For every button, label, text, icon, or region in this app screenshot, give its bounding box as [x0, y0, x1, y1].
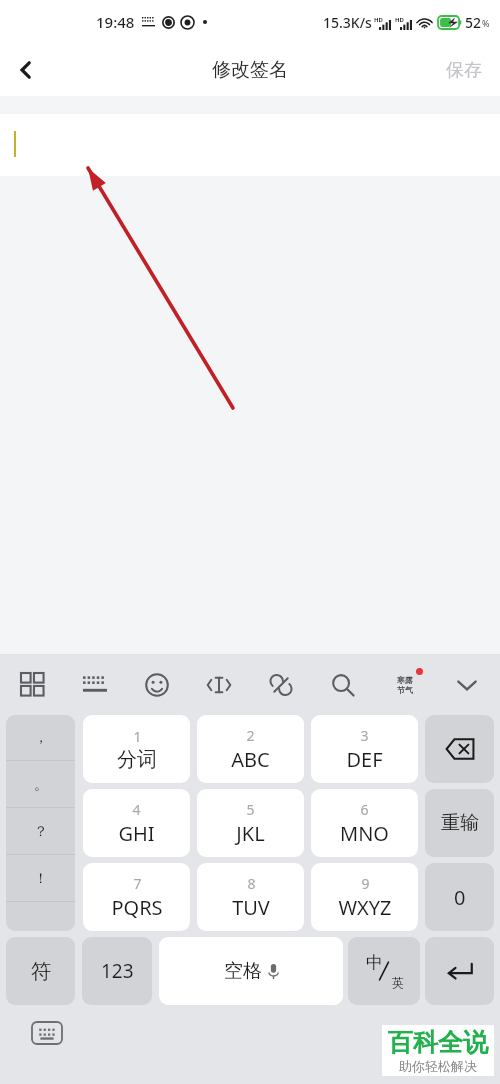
staticText: 百科全说	[388, 1027, 488, 1058]
button[interactable]: Search	[322, 664, 364, 706]
staticText: ！	[34, 870, 48, 888]
staticText: 节气	[397, 685, 413, 695]
staticText: 7	[133, 874, 142, 893]
staticText: 15.3K/s	[323, 13, 372, 32]
staticText: 。	[34, 776, 48, 794]
button[interactable]: Emoji	[136, 664, 178, 706]
staticText: 助你轻松解决	[399, 1058, 477, 1074]
staticText: 123	[101, 958, 134, 984]
button[interactable]: Backspace	[425, 715, 494, 783]
button[interactable]: 0	[425, 863, 494, 931]
staticText: 5	[246, 800, 255, 819]
staticText: 6	[360, 800, 369, 819]
button[interactable]: 6	[311, 789, 418, 857]
staticText: WXYZ	[338, 894, 392, 921]
staticText: TUV	[232, 894, 270, 921]
staticText: ？	[34, 823, 48, 841]
staticText: 8	[247, 874, 256, 893]
staticText: 4	[132, 800, 141, 819]
button[interactable]: 1	[83, 715, 190, 783]
button[interactable]: 123	[82, 937, 152, 1005]
staticText: ，	[34, 729, 48, 747]
staticText: 1	[133, 727, 142, 746]
staticText: JKL	[236, 820, 265, 847]
staticText: 中	[366, 952, 383, 973]
staticText: ABC	[231, 746, 270, 773]
button[interactable]: 7	[83, 863, 190, 931]
button[interactable]: 保存	[428, 44, 500, 96]
staticText: 2	[246, 726, 255, 745]
staticText: 分词	[117, 747, 157, 772]
staticText: 英	[392, 975, 404, 990]
button[interactable]: 5	[197, 789, 304, 857]
button[interactable]: Panels	[12, 664, 54, 706]
button[interactable]: Clipboard	[260, 664, 302, 706]
staticText: %	[482, 17, 490, 29]
staticText: 重输	[441, 811, 479, 835]
button[interactable]: Switch keyboard	[30, 1020, 64, 1046]
button[interactable]: Edit text	[198, 664, 240, 706]
button[interactable]: 3	[311, 715, 418, 783]
button[interactable]: Hide keyboard	[446, 664, 488, 706]
button[interactable]: 2	[197, 715, 304, 783]
button[interactable]: Seasonal	[384, 664, 426, 706]
button[interactable]: 8	[197, 863, 304, 931]
button[interactable]: ？	[6, 808, 75, 855]
button[interactable]: 9	[311, 863, 418, 931]
button[interactable]: 符	[6, 937, 75, 1005]
button[interactable]: ！	[6, 855, 75, 902]
button[interactable]	[0, 114, 500, 176]
staticText: 19:48	[96, 12, 135, 32]
staticText: 空格	[224, 959, 262, 983]
staticText: DEF	[346, 746, 383, 773]
button[interactable]: 重输	[425, 789, 494, 857]
staticText: PQRS	[111, 894, 163, 921]
staticText: 保存	[446, 59, 482, 82]
staticText: 9	[361, 874, 370, 893]
button[interactable]: Enter	[425, 937, 494, 1005]
button[interactable]: Back	[0, 44, 52, 96]
staticText: 0	[454, 884, 466, 911]
button[interactable]: ，	[6, 715, 75, 761]
staticText: 寒露	[397, 675, 413, 685]
staticText: HD	[374, 16, 383, 24]
staticText: 修改签名	[212, 58, 288, 82]
staticText: GHI	[118, 820, 155, 847]
staticText: 52	[465, 13, 482, 32]
button[interactable]: Keyboard layout	[74, 664, 116, 706]
button[interactable]: 。	[6, 761, 75, 808]
staticText: HD	[395, 16, 404, 24]
button[interactable]: 中	[348, 937, 420, 1005]
button[interactable]: 空格	[159, 937, 343, 1005]
staticText: 3	[360, 726, 369, 745]
staticText: MNO	[340, 820, 389, 847]
button[interactable]: 4	[83, 789, 190, 857]
staticText: 符	[31, 959, 51, 984]
